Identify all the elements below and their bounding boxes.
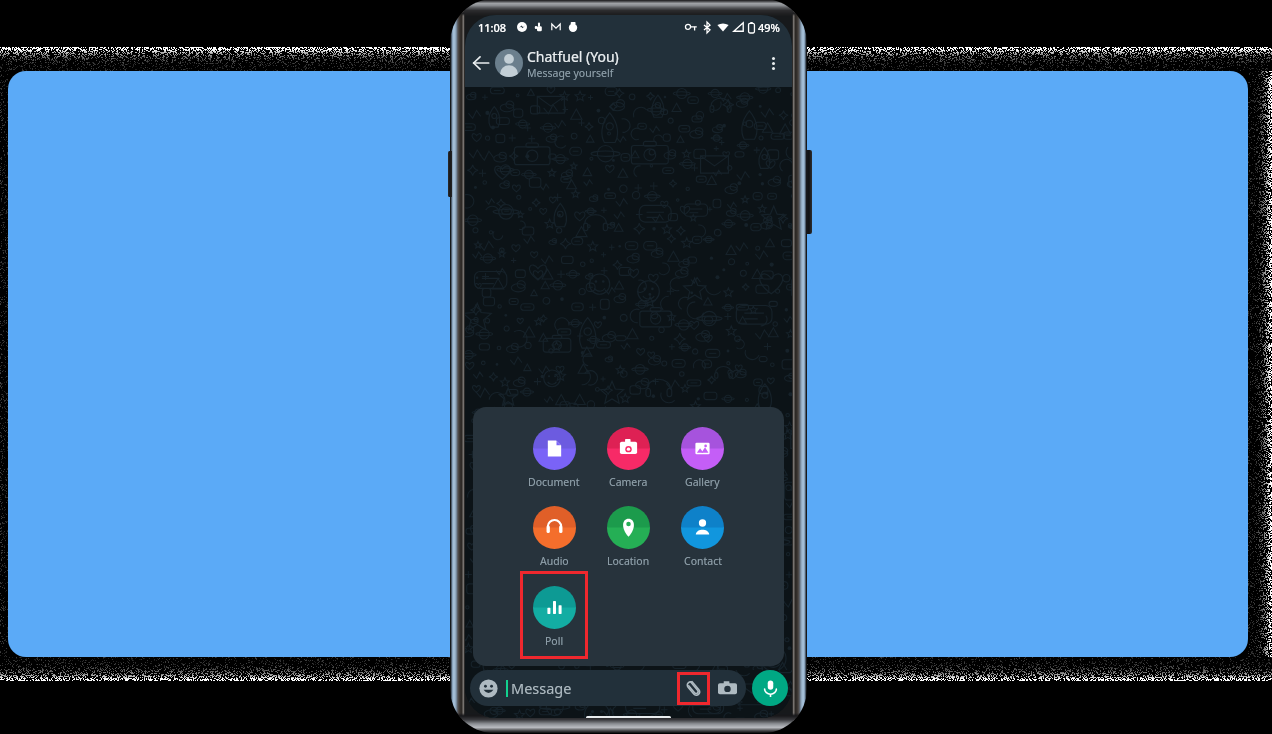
staticText: Poll [545,634,564,648]
staticText: Contact [684,554,722,568]
staticText: Message yourself [527,66,614,80]
button[interactable]: Voice message [752,670,788,706]
staticText: Message [511,678,572,698]
staticText: Camera [609,475,648,489]
button[interactable]: More options [760,50,786,76]
staticText: Audio [540,554,569,568]
staticText: Gallery [685,475,720,489]
button[interactable]: Profile photo [495,49,523,77]
staticText: Chatfuel (You) [527,47,619,66]
staticText: 11:08 [478,20,507,35]
button[interactable]: Document [520,412,588,500]
staticText: Document [528,475,580,489]
button[interactable]: Back [468,50,494,76]
button[interactable]: Attach [677,672,710,705]
button[interactable]: Gallery [668,412,736,500]
button[interactable]: Emoji [479,679,498,698]
button[interactable]: Camera [594,412,662,500]
button[interactable]: Poll [520,571,588,659]
staticText: Location [607,554,650,568]
staticText: 49% [758,20,780,35]
button[interactable]: Audio [520,491,588,579]
button[interactable]: Camera [716,677,738,699]
button[interactable]: Location [594,491,662,579]
button[interactable]: Contact [668,491,736,579]
